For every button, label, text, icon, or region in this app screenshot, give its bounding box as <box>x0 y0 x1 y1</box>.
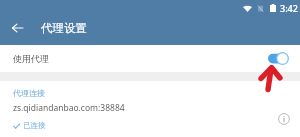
button[interactable]: 代理连接 <box>0 81 300 137</box>
staticText: 已连接 <box>23 121 46 130</box>
button[interactable]: Info <box>274 109 294 129</box>
staticText: 3:42 <box>280 2 298 14</box>
staticText: 代理设置 <box>41 21 87 35</box>
staticText: 代理连接 <box>13 88 45 98</box>
button[interactable]: Back <box>4 15 30 41</box>
staticText: zs.qidiandanbao.com:38884 <box>13 102 125 114</box>
staticText: 使用代理 <box>13 53 49 64</box>
button[interactable]: 使用代理 <box>0 45 300 72</box>
